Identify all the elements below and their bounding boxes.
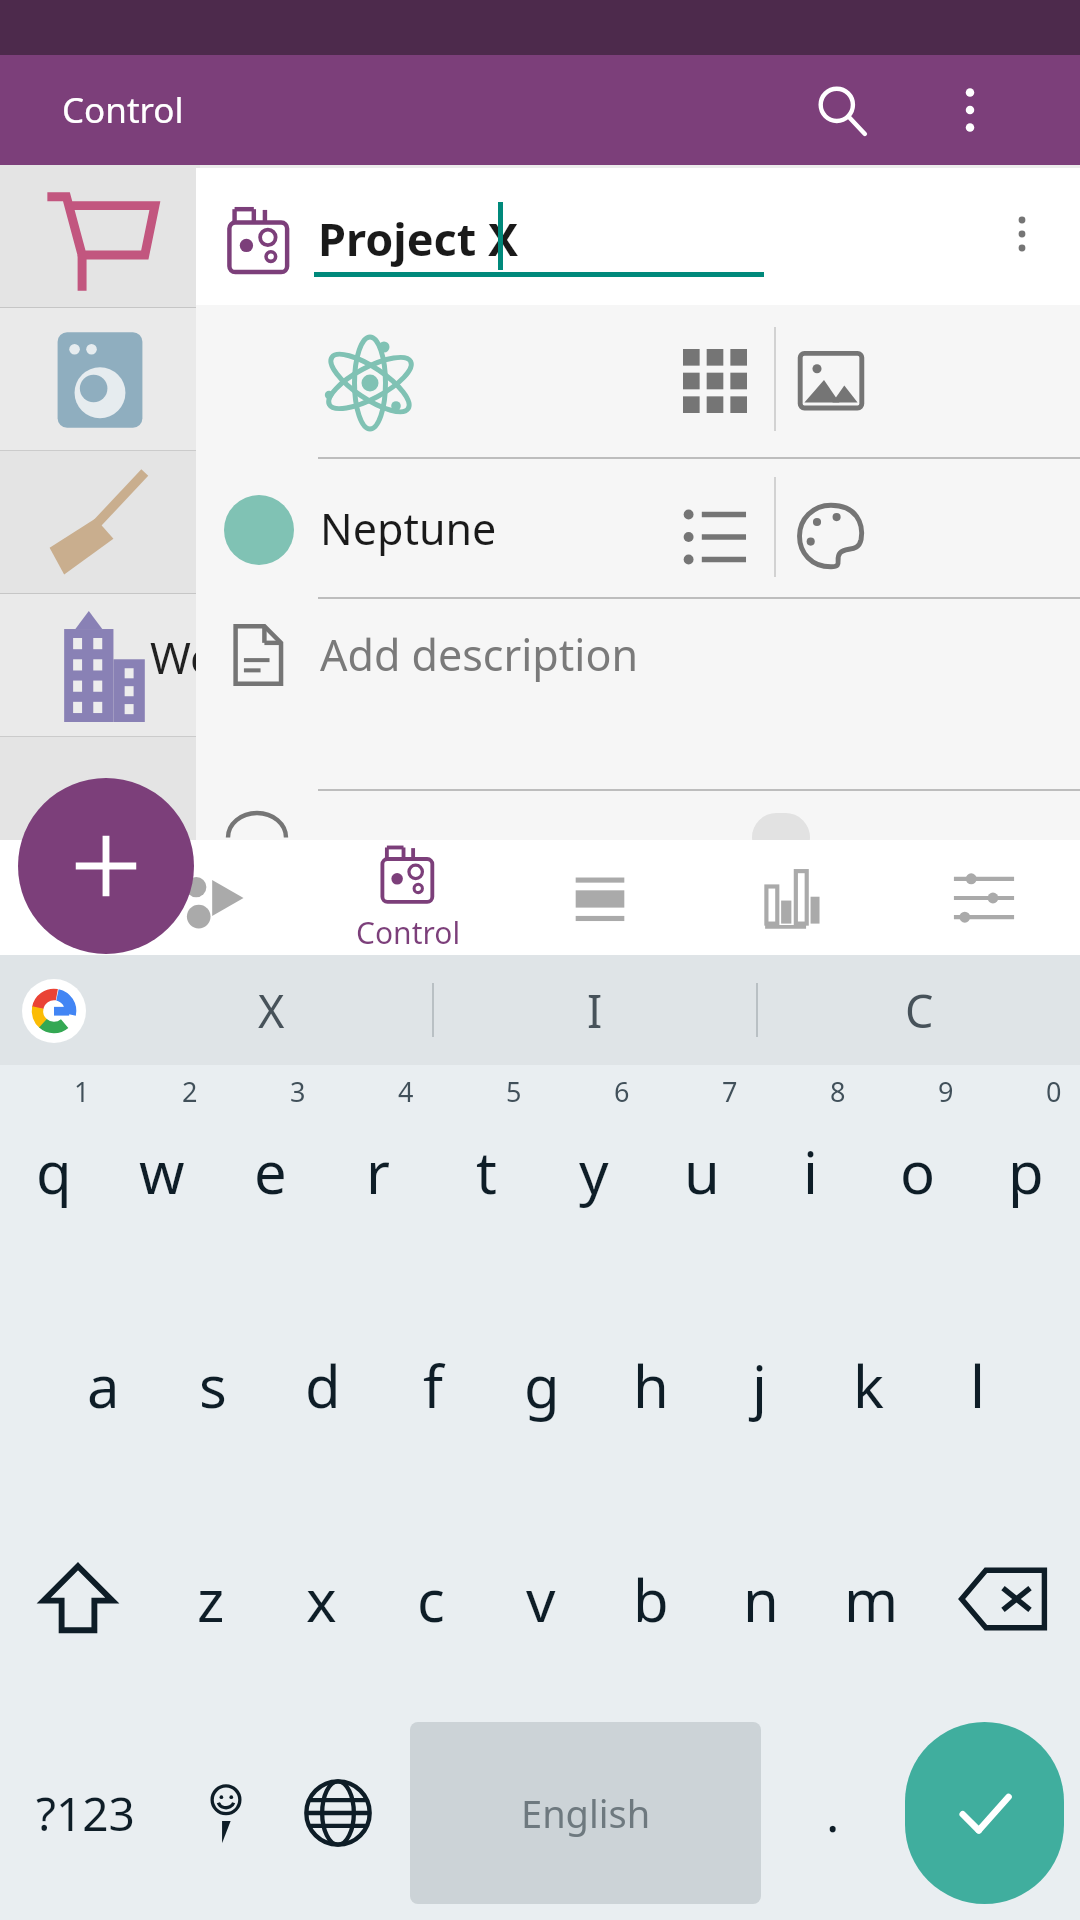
staticText: j — [752, 1346, 767, 1425]
staticText: 1 — [74, 1073, 90, 1110]
staticText: Project X — [318, 208, 519, 269]
button[interactable]: . — [777, 1706, 889, 1920]
button[interactable]: r — [324, 1065, 432, 1278]
staticText: o — [900, 1132, 936, 1211]
button[interactable]: f — [378, 1278, 487, 1492]
button[interactable]: Backspace — [926, 1492, 1080, 1706]
button[interactable]: q — [0, 1065, 108, 1278]
button[interactable]: t — [432, 1065, 540, 1278]
staticText: x — [306, 1560, 337, 1639]
button[interactable]: Charts — [696, 840, 888, 955]
button[interactable]: g — [487, 1278, 596, 1492]
button[interactable]: y — [540, 1065, 648, 1278]
staticText: a — [87, 1346, 120, 1425]
button[interactable] — [0, 165, 200, 308]
button[interactable]: b — [596, 1492, 706, 1706]
button[interactable]: Add — [18, 778, 194, 954]
button[interactable]: a — [48, 1278, 158, 1492]
button[interactable]: l — [923, 1278, 1032, 1492]
staticText: C — [905, 980, 934, 1041]
staticText: ?123 — [36, 1782, 135, 1845]
staticText: s — [199, 1346, 227, 1425]
staticText: I — [587, 980, 603, 1041]
button[interactable]: n — [706, 1492, 816, 1706]
button[interactable]: ?123 — [0, 1706, 170, 1920]
staticText: b — [633, 1560, 669, 1639]
staticText: e — [254, 1132, 287, 1211]
button[interactable]: Palette — [796, 501, 866, 571]
staticText: Add description — [320, 625, 638, 684]
staticText: 7 — [722, 1073, 738, 1110]
button[interactable]: Image — [796, 345, 866, 415]
button[interactable]: m — [816, 1492, 926, 1706]
button[interactable]: i — [756, 1065, 864, 1278]
staticText: 9 — [938, 1073, 954, 1110]
staticText: Neptune — [320, 499, 497, 558]
button[interactable]: Settings — [888, 840, 1080, 955]
button[interactable]: Grid view — [683, 349, 747, 413]
staticText: p — [1008, 1132, 1044, 1211]
button[interactable]: Google — [22, 979, 86, 1043]
staticText: h — [633, 1346, 669, 1425]
button[interactable]: Shift — [0, 1492, 155, 1706]
staticText: 0 — [1046, 1073, 1062, 1110]
button[interactable]: I — [434, 955, 756, 1065]
staticText: v — [526, 1560, 556, 1639]
staticText: n — [743, 1560, 779, 1639]
staticText: f — [423, 1346, 443, 1425]
staticText: t — [476, 1132, 497, 1211]
staticText: u — [684, 1132, 720, 1211]
staticText: z — [197, 1560, 225, 1639]
staticText: Control — [356, 912, 461, 953]
button[interactable] — [0, 594, 200, 737]
button[interactable]: c — [376, 1492, 486, 1706]
button[interactable]: w — [108, 1065, 216, 1278]
button[interactable]: X — [110, 955, 432, 1065]
button[interactable]: j — [705, 1278, 814, 1492]
staticText: 2 — [182, 1073, 198, 1110]
button[interactable]: p — [972, 1065, 1080, 1278]
button[interactable]: k — [814, 1278, 923, 1492]
button[interactable]: h — [596, 1278, 705, 1492]
staticText: 4 — [398, 1073, 414, 1110]
button[interactable]: e — [216, 1065, 324, 1278]
button[interactable]: List — [682, 504, 748, 570]
button[interactable]: x — [266, 1492, 376, 1706]
button[interactable]: Change language — [282, 1706, 394, 1920]
button[interactable]: English — [410, 1722, 761, 1904]
button[interactable]: More options — [922, 62, 1018, 158]
staticText: m — [844, 1560, 899, 1639]
button[interactable]: Add description — [196, 599, 1080, 789]
staticText: d — [305, 1346, 341, 1425]
button[interactable]: u — [648, 1065, 756, 1278]
button[interactable] — [0, 308, 200, 451]
button[interactable] — [0, 451, 200, 594]
staticText: 8 — [830, 1073, 846, 1110]
button[interactable]: Layout — [504, 840, 696, 955]
button[interactable]: d — [268, 1278, 378, 1492]
button[interactable]: Play — [120, 840, 312, 955]
staticText: k — [853, 1346, 884, 1425]
button[interactable]: o — [864, 1065, 972, 1278]
button[interactable]: s — [158, 1278, 268, 1492]
button[interactable] — [0, 737, 200, 880]
staticText: w — [139, 1132, 185, 1211]
button[interactable]: Control — [312, 840, 504, 955]
button[interactable]: More options — [982, 194, 1062, 274]
staticText: We — [150, 627, 215, 687]
staticText: l — [970, 1346, 985, 1425]
staticText: English — [521, 1787, 651, 1839]
staticText: i — [803, 1132, 818, 1211]
staticText: y — [579, 1132, 609, 1211]
button[interactable]: Enter — [905, 1722, 1064, 1904]
staticText: 3 — [290, 1073, 306, 1110]
button[interactable]: Search — [794, 62, 890, 158]
button[interactable]: C — [758, 955, 1080, 1065]
button[interactable]: Emoji — [170, 1706, 282, 1920]
staticText: 5 — [506, 1073, 522, 1110]
staticText: g — [524, 1346, 560, 1425]
button[interactable]: z — [155, 1492, 266, 1706]
staticText: r — [366, 1132, 390, 1211]
button[interactable]: v — [486, 1492, 596, 1706]
staticText: . — [826, 1779, 840, 1847]
